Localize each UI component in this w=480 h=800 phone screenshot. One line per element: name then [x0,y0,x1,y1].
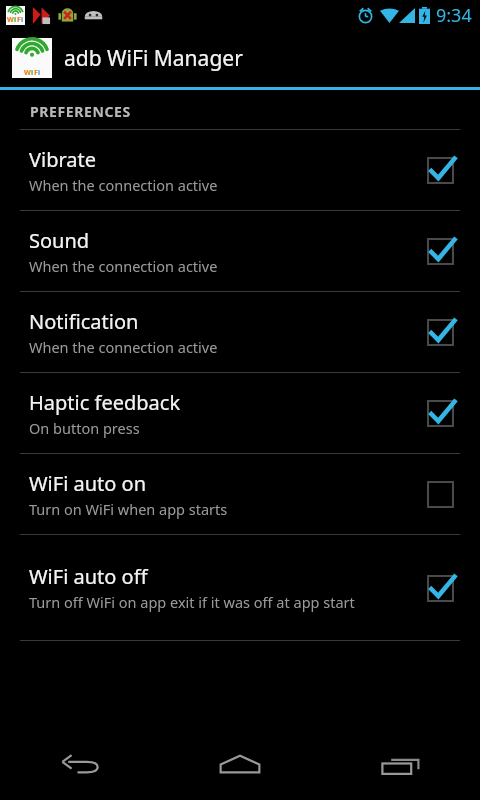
button[interactable]: Checked [420,568,460,608]
button[interactable]: WiFi auto off [0,535,480,640]
button[interactable]: WiFi auto on [0,454,480,534]
button[interactable]: Unchecked [420,474,460,514]
staticText: Sound [29,227,90,254]
staticText: When the connection active [29,337,218,357]
staticText: Haptic feedback [29,389,181,416]
button[interactable]: Checked [420,393,460,433]
button[interactable]: Notification [0,292,480,372]
staticText: Turn off WiFi on app exit if it was off … [29,592,355,612]
staticText: Notification [29,308,139,335]
button[interactable]: Sound [0,211,480,291]
button[interactable]: Recent apps [320,728,480,800]
staticText: Turn on WiFi when app starts [29,499,228,519]
staticText: WiFi auto on [29,470,147,497]
staticText: On button press [29,418,140,438]
staticText: adb WiFi Manager [64,44,243,73]
button[interactable]: Vibrate [0,130,480,210]
staticText: PREFERENCES [30,102,131,121]
staticText: 9:34 [436,3,472,28]
staticText: i [21,15,24,25]
staticText: When the connection active [29,175,218,195]
staticText: i [14,15,17,25]
button[interactable]: Haptic feedback [0,373,480,453]
button[interactable]: Checked [420,150,460,190]
button[interactable]: Checked [420,231,460,271]
staticText: W [7,15,14,25]
staticText: When the connection active [29,256,218,276]
staticText: WiFi auto off [29,563,148,590]
staticText: i [31,68,34,78]
staticText: W [24,68,31,78]
staticText: F [34,68,38,78]
button[interactable]: Checked [420,312,460,352]
button[interactable]: Back [0,728,160,800]
staticText: F [17,15,21,25]
staticText: i [38,68,41,78]
button[interactable]: Home [160,728,320,800]
staticText: Vibrate [29,146,97,173]
